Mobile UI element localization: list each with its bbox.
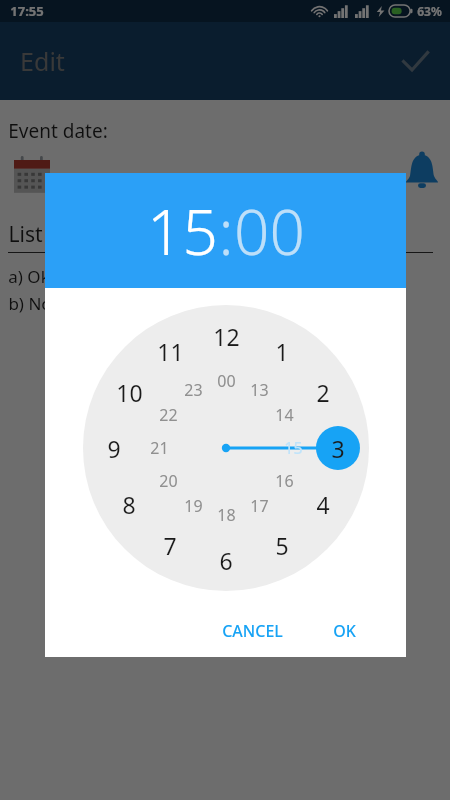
staticText: 7 [163, 530, 177, 561]
staticText: 5 [275, 530, 289, 561]
staticText: 20 [159, 470, 178, 492]
staticText: 00 [234, 189, 305, 273]
staticText: 3 [331, 433, 345, 464]
staticText: 00 [217, 370, 236, 392]
button[interactable]: Edit [0, 22, 450, 100]
staticText: 14 [275, 404, 294, 426]
staticText: 11 [157, 336, 184, 367]
staticText: 21 [150, 437, 169, 459]
staticText: 15 [284, 437, 303, 459]
staticText: 12 [213, 321, 240, 352]
staticText: 18 [217, 504, 236, 526]
staticText: 8 [122, 489, 136, 520]
staticText: CANCEL [222, 620, 283, 642]
button[interactable]: 1 [83, 305, 369, 591]
staticText: 17:55 [10, 2, 44, 20]
staticText: : [218, 189, 234, 273]
staticText: 16 [275, 470, 294, 492]
staticText: 9 [107, 433, 121, 464]
staticText: Edit [20, 44, 65, 78]
staticText: Event date: [8, 118, 108, 144]
staticText: 1 [275, 336, 289, 367]
button[interactable]: CANCEL [214, 614, 291, 648]
button[interactable]: 00 [234, 189, 305, 273]
staticText: 19 [184, 495, 203, 517]
staticText: 15 [147, 189, 218, 273]
staticText: 13 [250, 379, 269, 401]
staticText: 17 [250, 495, 269, 517]
staticText: 10 [116, 377, 143, 408]
button[interactable]: OK [325, 614, 364, 648]
staticText: List [8, 220, 43, 249]
staticText: 22 [159, 404, 178, 426]
staticText: OK [333, 620, 356, 642]
button[interactable]: Done [394, 40, 436, 82]
staticText: 63% [417, 3, 442, 19]
staticText: b) No [8, 292, 52, 315]
staticText: 2 [316, 377, 330, 408]
staticText: a) Ok [8, 265, 50, 288]
staticText: 4 [316, 489, 330, 520]
staticText: 23 [184, 379, 203, 401]
staticText: 6 [219, 545, 233, 576]
button[interactable]: 15 [147, 189, 218, 273]
